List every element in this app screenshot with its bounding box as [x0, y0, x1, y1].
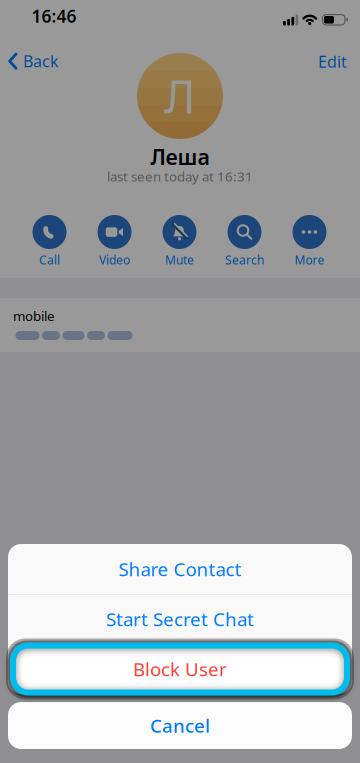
staticText: Share Contact: [118, 557, 241, 581]
button[interactable]: Edit: [318, 51, 347, 72]
staticText: More: [294, 252, 324, 268]
staticText: last seen today at 16:31: [107, 167, 253, 185]
staticText: Mute: [165, 252, 194, 268]
button[interactable]: Share Contact: [8, 544, 352, 594]
button[interactable]: More: [292, 215, 326, 268]
staticText: Video: [99, 252, 130, 268]
staticText: Cancel: [150, 713, 210, 738]
staticText: Start Secret Chat: [106, 607, 254, 631]
staticText: mobile: [13, 307, 55, 325]
button[interactable]: mobile: [0, 298, 360, 352]
staticText: Edit: [318, 51, 347, 72]
button[interactable]: Call: [32, 215, 66, 268]
button[interactable]: Block User: [15, 649, 345, 689]
staticText: Back: [23, 50, 59, 72]
staticText: 16:46: [31, 4, 76, 27]
button[interactable]: Mute: [162, 215, 196, 268]
staticText: Леша: [150, 142, 209, 171]
staticText: Block User: [133, 657, 227, 681]
staticText: Л: [164, 66, 196, 126]
staticText: Search: [225, 252, 264, 268]
staticText: Call: [39, 252, 60, 268]
button[interactable]: Back: [8, 50, 59, 72]
button[interactable]: Start Secret Chat: [8, 594, 352, 644]
button[interactable]: Search: [225, 215, 264, 268]
button[interactable]: Cancel: [8, 702, 352, 749]
button[interactable]: Video: [97, 215, 131, 268]
